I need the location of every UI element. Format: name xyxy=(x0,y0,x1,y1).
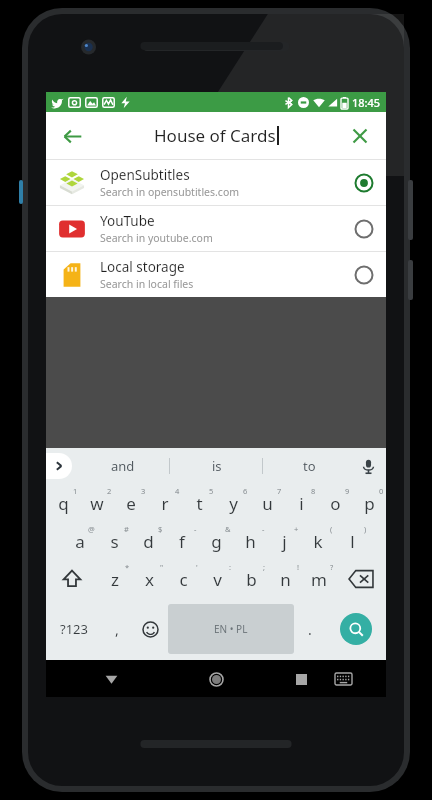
staticText: : xyxy=(229,562,232,572)
staticText: 18:45 xyxy=(352,95,381,110)
staticText: ?123 xyxy=(60,620,88,638)
staticText: * xyxy=(125,562,130,572)
staticText: j xyxy=(282,530,287,553)
button[interactable]: and xyxy=(76,448,170,484)
button[interactable]: Clear search xyxy=(342,118,378,154)
staticText: m xyxy=(311,568,327,591)
staticText: @ xyxy=(88,524,95,534)
button[interactable]: a xyxy=(63,522,97,560)
button[interactable]: Back xyxy=(94,662,128,696)
button[interactable]: j xyxy=(267,522,301,560)
staticText: 2 xyxy=(107,486,112,496)
staticText: r xyxy=(161,492,169,515)
staticText: + xyxy=(294,524,299,534)
staticText: y xyxy=(229,492,238,515)
button[interactable]: u xyxy=(250,484,284,522)
button[interactable]: Voice input xyxy=(356,454,380,478)
button[interactable]: g xyxy=(199,522,233,560)
staticText: 1 xyxy=(73,486,78,496)
staticText: 0 xyxy=(379,486,384,496)
button[interactable]: Back xyxy=(54,118,90,154)
button[interactable]: is xyxy=(170,448,263,484)
button[interactable]: Local storage xyxy=(46,252,386,297)
staticText: d xyxy=(143,530,154,553)
button[interactable]: , xyxy=(101,598,133,660)
staticText: ) xyxy=(364,524,367,534)
button[interactable]: Hide keyboard xyxy=(328,664,358,694)
staticText: Search in local files xyxy=(100,277,194,291)
staticText: ' xyxy=(196,562,198,572)
button[interactable]: d xyxy=(131,522,165,560)
button[interactable]: to xyxy=(263,448,356,484)
staticText: Local storage xyxy=(100,258,185,276)
staticText: & xyxy=(225,524,231,534)
staticText: 9 xyxy=(345,486,350,496)
button[interactable]: z xyxy=(97,560,132,598)
button[interactable]: i xyxy=(284,484,318,522)
staticText: p xyxy=(364,492,375,515)
button[interactable]: p xyxy=(352,484,386,522)
button[interactable]: YouTube xyxy=(46,206,386,251)
staticText: c xyxy=(179,568,188,591)
staticText: v xyxy=(213,568,222,591)
button[interactable]: ?123 xyxy=(46,598,101,660)
staticText: k xyxy=(313,530,323,553)
staticText: w xyxy=(90,492,104,515)
button[interactable]: s xyxy=(97,522,131,560)
button[interactable]: r xyxy=(148,484,182,522)
button[interactable]: b xyxy=(234,560,268,598)
button[interactable]: h xyxy=(233,522,267,560)
button[interactable]: v xyxy=(200,560,234,598)
button[interactable]: w xyxy=(80,484,114,522)
button[interactable]: More suggestions xyxy=(46,453,72,479)
staticText: i xyxy=(299,492,304,515)
staticText: ? xyxy=(330,562,334,572)
staticText: . xyxy=(308,620,312,639)
button[interactable]: Backspace xyxy=(336,560,386,598)
staticText: z xyxy=(111,568,119,591)
staticText: # xyxy=(124,524,129,534)
staticText: to xyxy=(303,457,316,475)
button[interactable]: y xyxy=(216,484,250,522)
staticText: House of Cards xyxy=(154,124,276,147)
staticText: n xyxy=(280,568,291,591)
staticText: ! xyxy=(297,562,300,572)
staticText: 8 xyxy=(311,486,316,496)
button[interactable]: k xyxy=(301,522,335,560)
button[interactable]: f xyxy=(165,522,199,560)
staticText: is xyxy=(212,457,222,475)
staticText: s xyxy=(110,530,119,553)
button[interactable]: x xyxy=(132,560,166,598)
button[interactable]: OpenSubtitles xyxy=(46,160,386,205)
button[interactable]: . xyxy=(294,598,326,660)
button[interactable]: t xyxy=(182,484,216,522)
button[interactable]: Emoji xyxy=(133,598,168,660)
button[interactable]: e xyxy=(114,484,148,522)
staticText: b xyxy=(246,568,257,591)
staticText: , xyxy=(115,620,119,639)
button[interactable]: EN • PL xyxy=(168,604,294,654)
button[interactable]: c xyxy=(166,560,200,598)
staticText: x xyxy=(145,568,154,591)
staticText: $ xyxy=(158,524,163,534)
button[interactable]: q xyxy=(46,484,80,522)
staticText: EN • PL xyxy=(214,622,248,636)
button[interactable]: Home xyxy=(199,662,233,696)
button[interactable]: Recents xyxy=(286,664,316,694)
staticText: Search in youtube.com xyxy=(100,231,213,245)
staticText: 3 xyxy=(141,486,146,496)
button[interactable]: Shift xyxy=(46,560,97,598)
button[interactable]: o xyxy=(318,484,352,522)
staticText: ; xyxy=(263,562,266,572)
staticText: g xyxy=(211,530,222,553)
button[interactable]: l xyxy=(335,522,369,560)
staticText: " xyxy=(160,562,164,572)
button[interactable]: n xyxy=(268,560,302,598)
staticText: ( xyxy=(330,524,333,534)
staticText: 7 xyxy=(277,486,282,496)
staticText: e xyxy=(126,492,136,515)
button[interactable]: Search xyxy=(326,598,386,660)
staticText: f xyxy=(179,530,185,553)
staticText: q xyxy=(58,492,69,515)
button[interactable]: m xyxy=(302,560,336,598)
